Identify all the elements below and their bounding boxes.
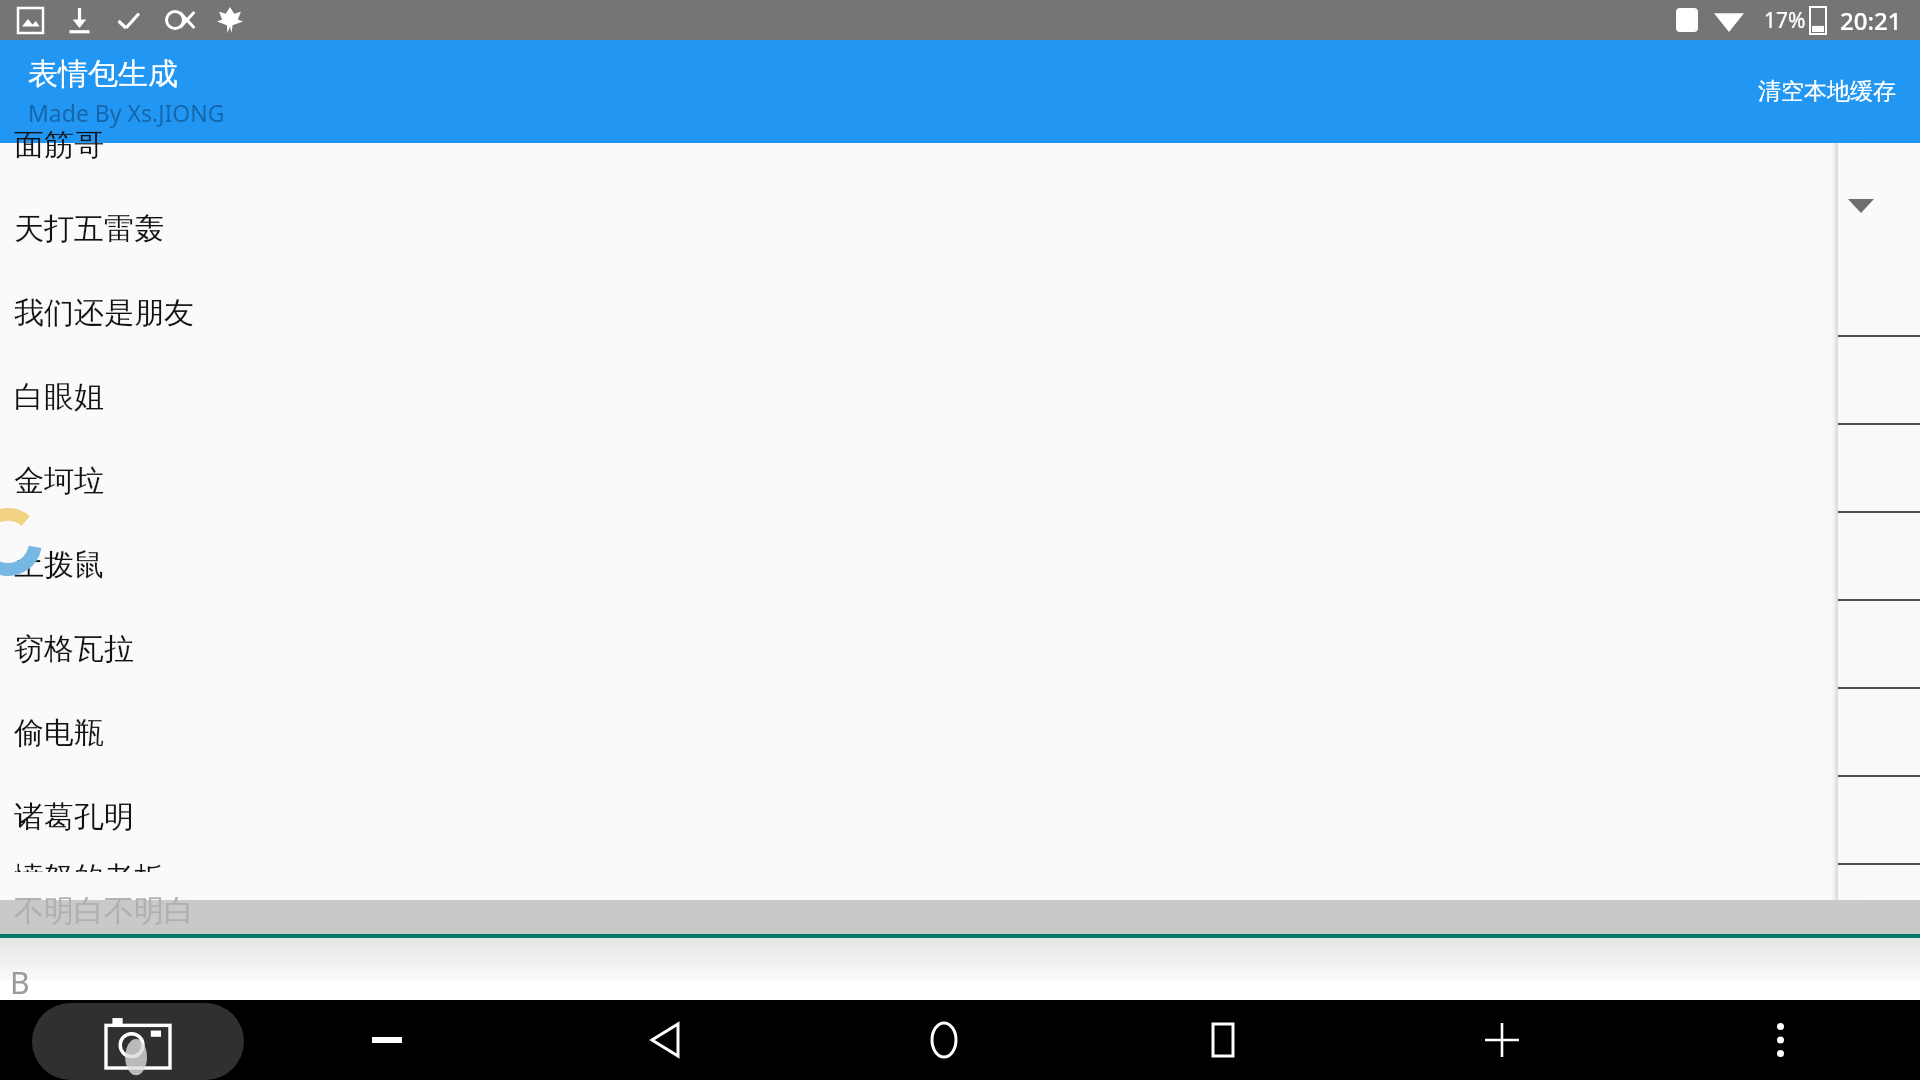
staticText: 清空本地缓存 [1758,77,1896,106]
button[interactable]: Add [1362,1000,1641,1080]
button[interactable]: Back [526,1000,804,1080]
button[interactable]: 我们还是朋友 [0,271,1838,355]
button[interactable]: Minimize [248,1000,526,1080]
staticText: 我们还是朋友 [14,294,194,332]
staticText: 20:21 [1840,4,1902,37]
button[interactable]: More options [1641,1000,1920,1080]
staticText: 偷电瓶 [14,714,104,752]
other: Open dropdown [1848,199,1874,213]
button[interactable]: 窃格瓦拉 [0,607,1838,691]
button[interactable]: 愤怒的老板 [0,859,1838,872]
staticText: 表情包生成 [28,55,178,93]
staticText: 白眼姐 [14,378,104,416]
button[interactable]: 面筋哥 [0,103,1838,187]
button[interactable]: 诸葛孔明 [0,775,1838,859]
button[interactable]: 土拨鼠 [0,523,1838,607]
button[interactable]: Recents [1083,1000,1362,1080]
staticText: 面筋哥 [14,126,104,164]
button[interactable]: Camera [32,1003,244,1080]
staticText: 愤怒的老板 [14,859,164,872]
button[interactable]: 天打五雷轰 [0,187,1838,271]
staticText: 窃格瓦拉 [14,630,134,668]
button[interactable]: 清空本地缓存 [1734,59,1920,124]
staticText: B [10,962,30,1003]
staticText: 诸葛孔明 [14,798,134,836]
staticText: 不明白不明白 [14,892,194,928]
staticText: 天打五雷轰 [14,210,164,248]
staticText: Made By Xs.JIONG [28,97,225,128]
button[interactable]: 白眼姐 [0,355,1838,439]
staticText: 金坷垃 [14,462,104,500]
staticText: 土拨鼠 [14,546,104,584]
button[interactable]: 偷电瓶 [0,691,1838,775]
button[interactable]: Home [804,1000,1083,1080]
staticText: 17% [1764,6,1806,35]
button[interactable]: 金坷垃 [0,439,1838,523]
